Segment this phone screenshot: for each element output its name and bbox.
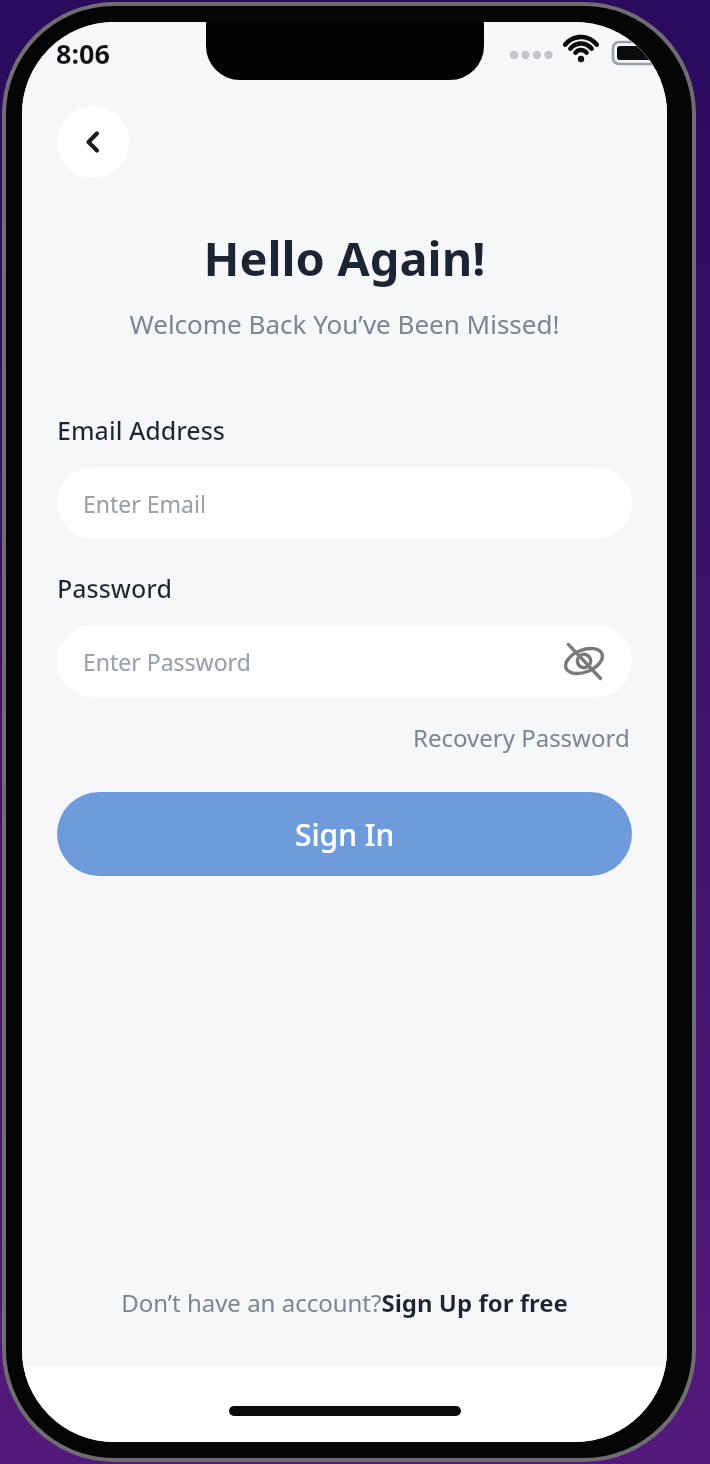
button[interactable]: Show password: [558, 635, 610, 687]
staticText: Don’t have an account?Sign Up for free: [121, 1286, 568, 1319]
button[interactable]: Back: [57, 106, 129, 178]
staticText: Password: [57, 571, 172, 605]
button[interactable]: Recovery Password: [411, 719, 632, 756]
staticText: Sign In: [295, 814, 395, 855]
staticText: Email Address: [57, 413, 226, 447]
staticText: 8:06: [56, 35, 110, 72]
button[interactable]: Enter Password: [57, 625, 632, 697]
staticText: Welcome Back You’ve Been Missed!: [22, 306, 667, 341]
button[interactable]: Don’t have an account?Sign Up for free: [22, 1280, 667, 1325]
button[interactable]: Enter Email: [57, 467, 632, 539]
button[interactable]: Sign In: [57, 792, 632, 876]
staticText: Hello Again!: [22, 226, 667, 290]
staticText: Enter Password: [83, 646, 251, 677]
staticText: Enter Email: [83, 488, 206, 519]
staticText: Recovery Password: [413, 721, 630, 754]
